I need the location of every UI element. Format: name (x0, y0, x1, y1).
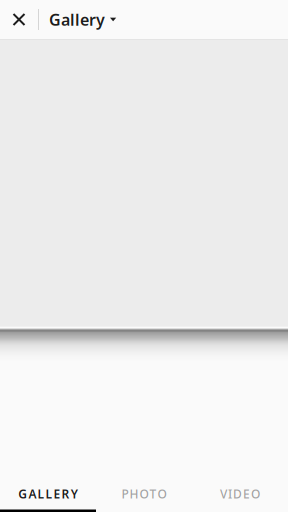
staticText: VIDEO (220, 486, 260, 502)
staticText: PHOTO (121, 486, 167, 502)
staticText: Gallery (49, 9, 105, 30)
staticText: GALLERY (18, 486, 78, 502)
button[interactable]: PHOTO (96, 478, 192, 512)
button[interactable]: VIDEO (192, 478, 288, 512)
button[interactable]: Gallery (39, 0, 126, 39)
button[interactable]: Close (0, 0, 38, 39)
button[interactable]: GALLERY (0, 478, 96, 512)
